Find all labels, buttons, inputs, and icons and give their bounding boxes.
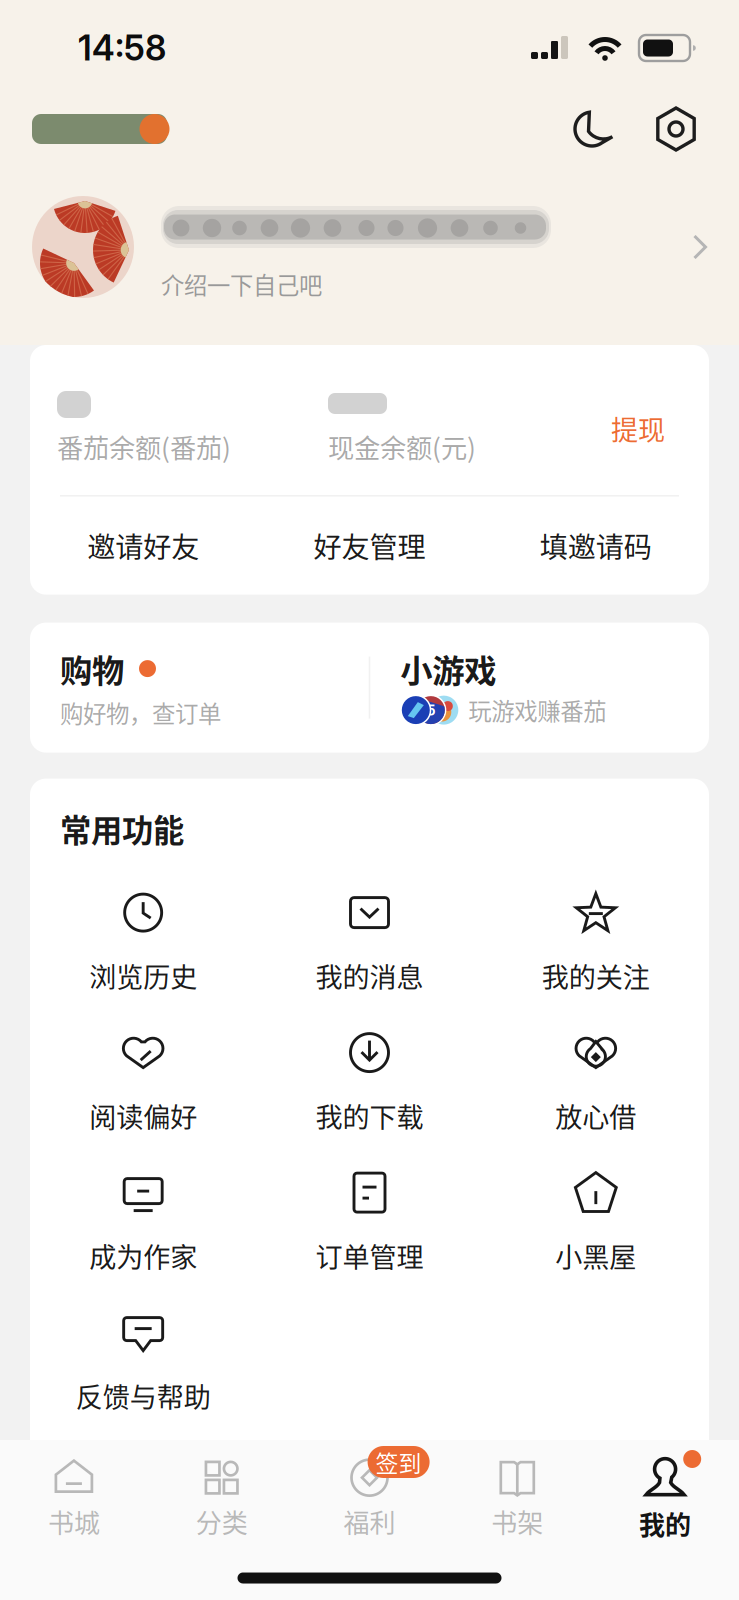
button[interactable]: Settings [651,104,701,154]
staticText: 现金余额(元) [328,427,476,465]
button[interactable]: 放心借 [483,1029,709,1131]
button[interactable]: 小黑屋 [483,1169,709,1271]
staticText: 反馈与帮助 [76,1376,211,1415]
staticText: 小黑屋 [555,1236,636,1275]
staticText: 我的消息 [315,956,423,995]
staticText: 玩游戏赚番茄 [468,693,606,727]
staticText: 好友管理 [313,525,425,566]
staticText: 填邀请码 [540,525,652,566]
staticText: 番茄余额(番茄) [57,427,231,465]
button[interactable]: 订单管理 [256,1169,483,1271]
staticText: 小游戏 [400,645,496,692]
staticText: 我的 [639,1505,691,1542]
staticText: 购好物，查订单 [60,696,221,729]
button[interactable]: 分类 [148,1440,296,1556]
button[interactable]: 书架 [443,1440,591,1556]
button[interactable]: 反馈与帮助 [30,1309,256,1411]
button[interactable]: 小游戏 [370,623,709,753]
staticText: 常用功能 [60,806,184,851]
button[interactable]: 邀请好友 [30,497,256,595]
staticText: 5 [426,701,435,719]
button[interactable]: 购物 [30,623,369,753]
staticText: 介绍一下自己吧 [161,267,322,301]
button[interactable]: 提现 [611,378,709,444]
staticText: 我的关注 [542,956,650,995]
button[interactable]: 福利 [296,1440,443,1556]
button[interactable]: 我的消息 [256,889,483,991]
button[interactable]: 我的关注 [483,889,709,991]
staticText: 14:58 [78,27,166,69]
staticText: 福利 [343,1503,395,1540]
staticText: 书架 [491,1503,543,1540]
staticText: 购物 [60,645,124,692]
button[interactable]: 阅读偏好 [30,1029,256,1131]
button[interactable]: 填邀请码 [483,497,709,595]
button[interactable]: 我的 [591,1440,739,1556]
staticText: 订单管理 [315,1236,423,1275]
button[interactable]: 浏览历史 [30,889,256,991]
button[interactable]: Night mode [569,105,617,153]
staticText: 阅读偏好 [89,1096,197,1135]
button[interactable]: 我的下载 [256,1029,483,1131]
staticText: 邀请好友 [87,525,199,566]
button[interactable]: 介绍一下自己吧 [0,162,739,316]
button[interactable]: 成为作家 [30,1169,256,1271]
staticText: 我的下载 [315,1096,423,1135]
staticText: 书城 [48,1503,100,1540]
staticText: 分类 [196,1503,248,1540]
staticText: 签到 [376,1445,422,1479]
staticText: 浏览历史 [89,956,197,995]
staticText: 成为作家 [89,1236,197,1275]
staticText: 放心借 [555,1096,636,1135]
button[interactable]: 好友管理 [256,497,483,595]
button[interactable]: 书城 [0,1440,148,1556]
staticText: 提现 [611,409,665,448]
